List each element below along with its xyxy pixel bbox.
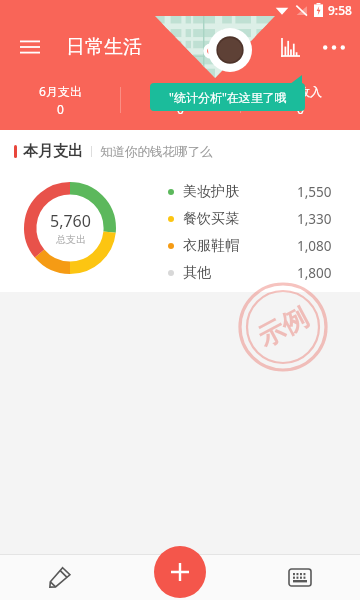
button[interactable]: Menu bbox=[10, 27, 50, 67]
staticText: 5,760 bbox=[50, 210, 91, 232]
staticText: 9:58 bbox=[328, 2, 352, 18]
button[interactable]: 餐饮买菜 bbox=[168, 205, 346, 232]
staticText: 6月支出 bbox=[39, 83, 82, 99]
staticText: 1,080 bbox=[297, 237, 332, 255]
staticText: 日常生活 bbox=[66, 35, 142, 59]
button[interactable]: 添加记账 bbox=[154, 546, 206, 598]
staticText: 知道你的钱花哪了么 bbox=[100, 144, 213, 160]
staticText: 1,330 bbox=[297, 210, 332, 228]
staticText: 0 bbox=[57, 101, 64, 117]
button[interactable]: 记一笔 bbox=[0, 554, 120, 600]
button[interactable]: 本月预算 bbox=[121, 84, 240, 117]
staticText: 总支出 bbox=[56, 233, 86, 246]
button[interactable]: 6月支出 bbox=[0, 83, 120, 117]
button[interactable]: 6月收入 bbox=[241, 83, 360, 117]
staticText: 1,550 bbox=[297, 183, 332, 201]
staticText: 本月支出 bbox=[23, 142, 83, 161]
staticText: 示例 bbox=[252, 301, 314, 354]
staticText: 美妆护肤 bbox=[183, 183, 239, 201]
button[interactable]: 本月支出 bbox=[0, 130, 360, 292]
button[interactable]: 统计分析 bbox=[268, 25, 312, 69]
staticText: 0 bbox=[177, 101, 184, 117]
staticText: 衣服鞋帽 bbox=[183, 237, 239, 255]
button[interactable]: "统计分析"在这里了哦 bbox=[150, 83, 305, 111]
staticText: 1,800 bbox=[297, 264, 332, 282]
button[interactable]: 键盘记账 bbox=[240, 554, 360, 600]
button[interactable]: More options bbox=[312, 25, 356, 69]
staticText: 其他 bbox=[183, 264, 211, 282]
staticText: "统计分析"在这里了哦 bbox=[169, 89, 287, 105]
staticText: 餐饮买菜 bbox=[183, 210, 239, 228]
staticText: 0 bbox=[297, 101, 304, 117]
button[interactable]: 美妆护肤 bbox=[168, 178, 346, 205]
button[interactable]: 其他 bbox=[168, 259, 346, 286]
button[interactable]: 衣服鞋帽 bbox=[168, 232, 346, 259]
staticText: 本月预算 bbox=[157, 84, 205, 99]
staticText: 6月收入 bbox=[279, 83, 322, 99]
